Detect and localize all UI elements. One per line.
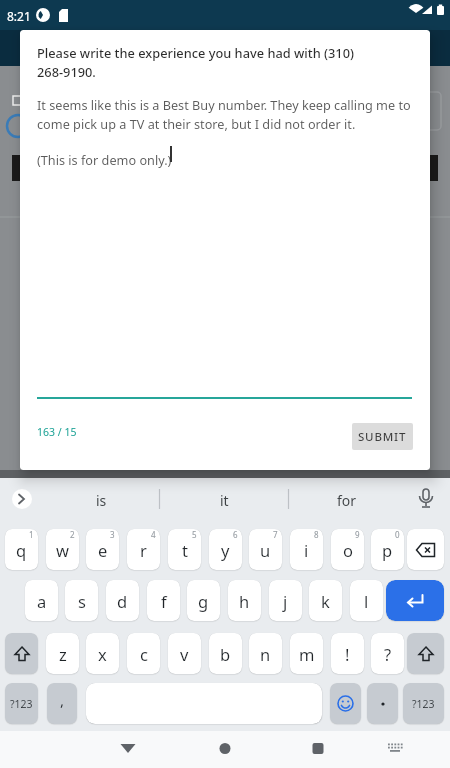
button[interactable]: m [290, 633, 323, 674]
staticText: SUBMIT [358, 429, 407, 445]
staticText: ?123 [10, 697, 33, 711]
staticText: , [60, 690, 65, 710]
button[interactable]: ?123 [5, 683, 38, 724]
button[interactable] [407, 529, 444, 570]
staticText: ? [384, 643, 392, 665]
button[interactable]: for [289, 480, 404, 520]
button[interactable]: q [5, 529, 38, 570]
staticText: It seems like this is a Best Buy number.… [37, 96, 411, 168]
staticText: o [343, 539, 353, 561]
staticText: 2 [70, 529, 75, 540]
staticText: for [337, 491, 357, 510]
button[interactable]: y [209, 529, 242, 570]
button[interactable] [209, 734, 241, 764]
staticText: w [56, 539, 69, 561]
staticText: i [304, 539, 309, 561]
staticText: ! [345, 643, 350, 665]
staticText: u [260, 539, 271, 561]
staticText: c [140, 643, 148, 665]
button[interactable] [367, 683, 398, 724]
button[interactable]: p [371, 529, 404, 570]
staticText: b [220, 643, 231, 665]
staticText: k [321, 590, 330, 612]
button[interactable]: is [45, 480, 158, 520]
staticText: 8:21 [7, 8, 31, 24]
button[interactable]: a [25, 580, 58, 621]
staticText: f [161, 590, 167, 612]
staticText: 4 [151, 529, 156, 540]
staticText: m [299, 643, 315, 665]
button[interactable]: t [168, 529, 201, 570]
button[interactable]: , [47, 683, 77, 724]
button[interactable]: c [127, 633, 160, 674]
staticText: l [364, 590, 369, 612]
button[interactable]: s [65, 580, 98, 621]
staticText: t [182, 539, 188, 561]
button[interactable]: SUBMIT [352, 423, 413, 450]
staticText: 7 [273, 529, 278, 540]
button[interactable]: b [209, 633, 242, 674]
staticText: s [78, 590, 86, 612]
staticText: 6 [233, 529, 238, 540]
staticText: x [98, 643, 107, 665]
button[interactable]: ?123 [403, 683, 444, 724]
button[interactable]: x [86, 633, 119, 674]
staticText: n [260, 643, 271, 665]
staticText: is [96, 491, 107, 510]
staticText: h [239, 590, 250, 612]
button[interactable] [407, 633, 444, 674]
staticText: y [221, 539, 230, 561]
button[interactable]: i [290, 529, 323, 570]
button[interactable] [330, 683, 361, 724]
staticText: 163 / 15 [37, 425, 77, 439]
button[interactable]: n [249, 633, 282, 674]
button[interactable]: f [147, 580, 180, 621]
button[interactable]: ! [331, 633, 364, 674]
staticText: ?123 [412, 697, 435, 711]
button[interactable]: ? [371, 633, 404, 674]
button[interactable] [302, 734, 334, 764]
staticText: 8 [314, 529, 319, 540]
button[interactable] [5, 633, 38, 674]
staticText: it [220, 491, 229, 510]
button[interactable] [112, 734, 144, 764]
staticText: z [59, 643, 67, 665]
button[interactable] [379, 734, 411, 764]
button[interactable]: g [187, 580, 220, 621]
staticText: 3 [110, 529, 115, 540]
button[interactable] [386, 580, 444, 621]
button[interactable] [12, 489, 32, 509]
button[interactable]: v [168, 633, 201, 674]
staticText: j [283, 590, 288, 612]
staticText: Please write the experience you have had… [37, 44, 354, 81]
staticText: 1 [29, 529, 34, 540]
staticText: e [98, 539, 108, 561]
button[interactable]: k [309, 580, 342, 621]
staticText: g [198, 590, 209, 612]
button[interactable]: d [106, 580, 139, 621]
staticText: d [117, 590, 128, 612]
staticText: 9 [355, 529, 360, 540]
button[interactable]: u [249, 529, 282, 570]
button[interactable]: r [127, 529, 160, 570]
staticText: r [140, 539, 147, 561]
staticText: 5 [192, 529, 197, 540]
button[interactable] [412, 486, 440, 514]
button[interactable]: h [228, 580, 261, 621]
button[interactable]: e [86, 529, 119, 570]
button[interactable]: it [161, 480, 287, 520]
button[interactable]: o [331, 529, 364, 570]
staticText: 0 [395, 529, 400, 540]
staticText: q [16, 539, 27, 561]
button[interactable]: l [350, 580, 383, 621]
button[interactable]: z [46, 633, 79, 674]
button[interactable]: w [46, 529, 79, 570]
staticText: a [37, 590, 47, 612]
staticText: v [180, 643, 189, 665]
staticText: p [382, 539, 393, 561]
button[interactable]: j [269, 580, 302, 621]
